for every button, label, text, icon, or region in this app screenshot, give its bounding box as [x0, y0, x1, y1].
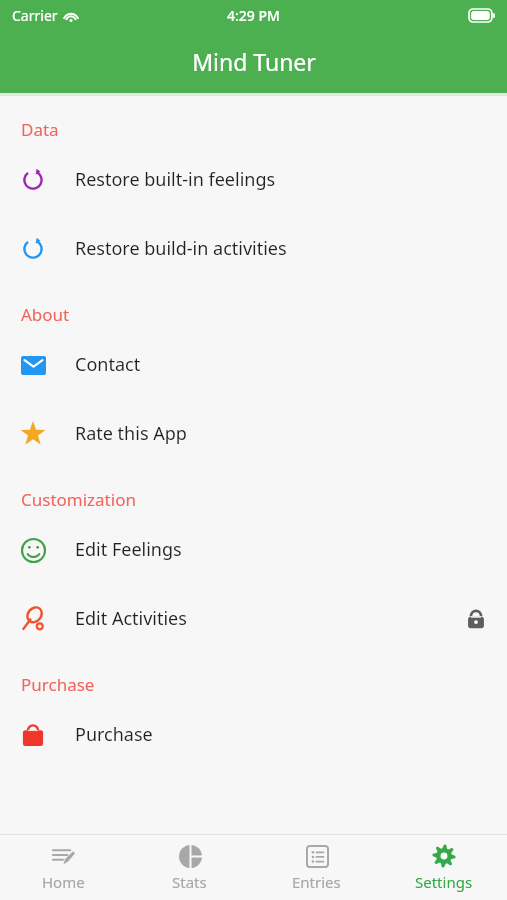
staticText: Edit Feelings	[75, 537, 182, 562]
button[interactable]: Contact	[0, 330, 507, 399]
staticText: Restore build-in activities	[75, 236, 287, 261]
staticText: Home	[42, 872, 85, 892]
staticText: Edit Activities	[75, 606, 187, 631]
staticText: Stats	[172, 872, 207, 892]
staticText: 4:29 PM	[227, 6, 280, 25]
staticText: Data	[21, 118, 59, 141]
staticText: Restore built-in feelings	[75, 167, 276, 192]
button[interactable]: Restore build-in activities	[0, 214, 507, 283]
staticText: About	[21, 303, 70, 326]
button[interactable]: Edit Activities	[0, 584, 507, 653]
button[interactable]: Home	[0, 843, 126, 892]
staticText: Contact	[75, 352, 141, 377]
button[interactable]: Rate this App	[0, 399, 507, 468]
staticText: Purchase	[21, 673, 95, 696]
button[interactable]: Restore built-in feelings	[0, 145, 507, 214]
staticText: Purchase	[75, 722, 153, 747]
staticText: Mind Tuner	[192, 46, 316, 77]
button[interactable]: Stats	[126, 843, 253, 892]
button[interactable]: Purchase	[0, 700, 507, 769]
staticText: Carrier	[12, 6, 58, 25]
button[interactable]: Entries	[253, 843, 380, 892]
button[interactable]: Edit Feelings	[0, 515, 507, 584]
staticText: Entries	[292, 872, 341, 892]
staticText: Customization	[21, 488, 136, 511]
staticText: Settings	[415, 872, 473, 892]
button[interactable]: Settings	[380, 843, 507, 892]
staticText: Rate this App	[75, 421, 187, 446]
